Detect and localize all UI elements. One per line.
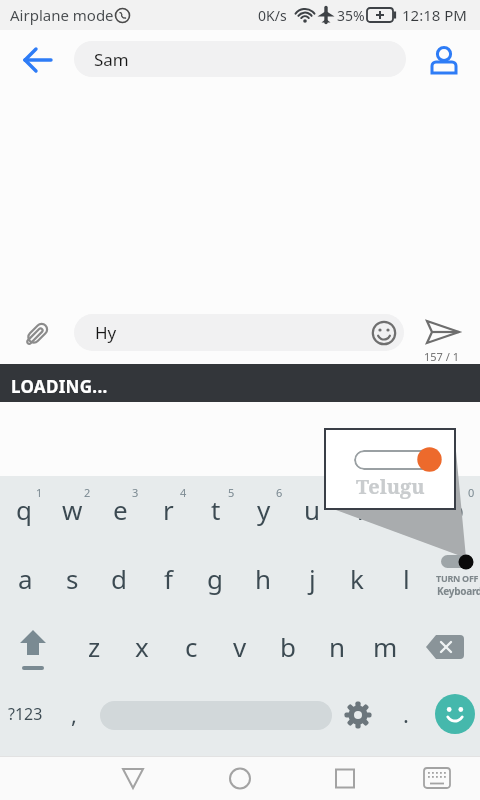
staticText: 7	[324, 485, 331, 500]
staticText: d	[111, 561, 127, 596]
button[interactable]: x	[118, 614, 166, 678]
staticText: 9	[420, 485, 427, 500]
button[interactable]	[217, 764, 263, 794]
button[interactable]	[110, 764, 156, 794]
button[interactable]: .	[396, 698, 416, 730]
button[interactable]: y	[240, 477, 288, 541]
staticText: 35%	[337, 6, 365, 25]
staticText: 157 / 1	[424, 349, 459, 364]
button[interactable]: Hy	[74, 314, 404, 351]
staticText: s	[66, 561, 79, 596]
button[interactable]: q	[0, 477, 48, 541]
staticText: 0	[468, 485, 475, 500]
button[interactable]: e	[96, 477, 144, 541]
button[interactable]	[414, 764, 460, 794]
button[interactable]	[435, 694, 475, 734]
button[interactable]: t	[192, 477, 240, 541]
button[interactable]: u	[288, 477, 336, 541]
staticText: ?123	[8, 703, 43, 725]
staticText: 0K/s	[258, 6, 287, 25]
button[interactable]: d	[95, 546, 143, 610]
staticText: Airplane mode	[10, 5, 114, 25]
staticText: 12:18 PM	[402, 5, 467, 25]
staticText: r	[163, 492, 174, 527]
button[interactable]: v	[216, 614, 264, 678]
button[interactable]	[354, 450, 439, 470]
staticText: q	[16, 492, 32, 527]
staticText: .	[403, 699, 409, 729]
staticText: x	[135, 629, 149, 664]
staticText: b	[280, 629, 296, 664]
staticText: Sam	[94, 48, 129, 71]
staticText: u	[304, 492, 321, 527]
staticText: f	[164, 561, 173, 596]
button[interactable]: r	[144, 477, 192, 541]
staticText: Hy	[95, 321, 117, 344]
staticText: a	[18, 561, 33, 596]
button[interactable]: z	[70, 614, 118, 678]
button[interactable]	[100, 701, 332, 730]
button[interactable]	[424, 634, 466, 662]
button[interactable]: w	[48, 477, 96, 541]
button[interactable]: f	[144, 546, 192, 610]
button[interactable]: Sam	[74, 41, 406, 77]
staticText: TURN OFF	[436, 572, 479, 584]
button[interactable]: ?123	[1, 698, 49, 730]
staticText: p	[448, 492, 464, 527]
button[interactable]	[14, 44, 60, 76]
button[interactable]: o	[384, 477, 432, 541]
staticText: c	[185, 629, 198, 664]
button[interactable]: i	[336, 477, 384, 541]
button[interactable]	[342, 699, 374, 731]
staticText: g	[207, 561, 223, 596]
staticText: i	[357, 492, 364, 527]
button[interactable]	[322, 764, 368, 794]
button[interactable]: ,	[60, 698, 88, 730]
button[interactable]: m	[361, 614, 409, 678]
staticText: 1	[36, 485, 43, 500]
button[interactable]	[12, 628, 54, 674]
button[interactable]: l	[382, 546, 430, 610]
staticText: Keyboard	[437, 584, 480, 598]
staticText: z	[88, 629, 101, 664]
staticText: n	[329, 629, 346, 664]
button[interactable]: n	[313, 614, 361, 678]
button[interactable]: h	[239, 546, 287, 610]
staticText: j	[309, 561, 316, 596]
staticText: 6	[276, 485, 283, 500]
button[interactable]: k	[333, 546, 381, 610]
staticText: e	[113, 492, 128, 527]
button[interactable]	[371, 320, 397, 346]
button[interactable]	[441, 555, 473, 568]
button[interactable]	[426, 42, 462, 78]
staticText: y	[257, 492, 271, 527]
staticText: v	[233, 629, 247, 664]
staticText: h	[255, 561, 272, 596]
button[interactable]: g	[191, 546, 239, 610]
staticText: l	[403, 561, 410, 596]
staticText: ,	[71, 699, 77, 729]
staticText: t	[211, 492, 221, 527]
staticText: Telugu	[356, 473, 425, 499]
button[interactable]: s	[48, 546, 96, 610]
staticText: o	[400, 492, 416, 527]
button[interactable]: c	[167, 614, 215, 678]
staticText: LOADING...	[11, 375, 108, 398]
staticText: 3	[132, 485, 139, 500]
button[interactable]: b	[264, 614, 312, 678]
button[interactable]: j	[288, 546, 336, 610]
staticText: 2	[84, 485, 91, 500]
staticText: k	[350, 561, 364, 596]
staticText: 4	[180, 485, 187, 500]
staticText: 5	[228, 485, 235, 500]
staticText: m	[373, 629, 398, 664]
staticText: 8	[372, 485, 379, 500]
staticText: w	[62, 492, 83, 527]
button[interactable]: a	[1, 546, 49, 610]
button[interactable]: p	[432, 477, 480, 541]
button[interactable]	[424, 318, 464, 348]
